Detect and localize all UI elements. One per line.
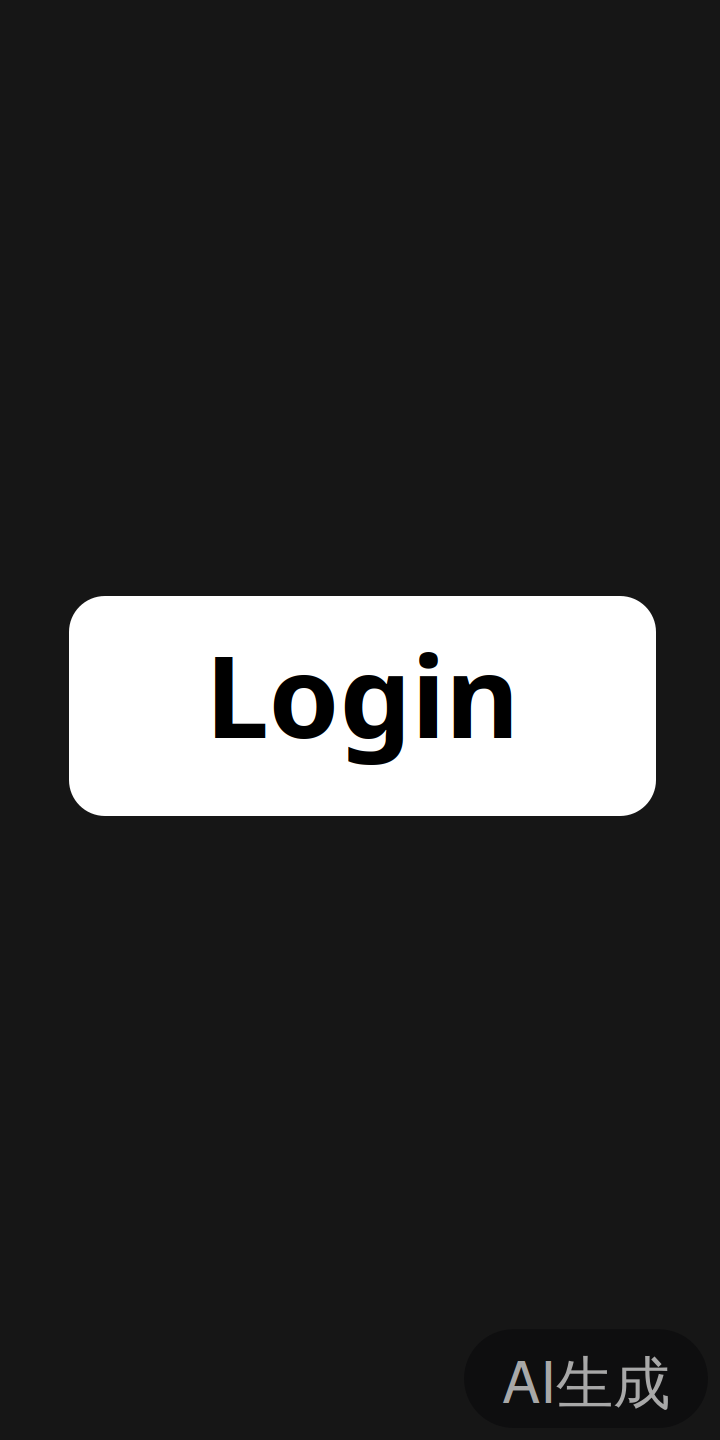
staticText: AI生成 xyxy=(502,1337,670,1420)
staticText: Login xyxy=(205,619,519,769)
button[interactable]: Login xyxy=(69,596,656,816)
